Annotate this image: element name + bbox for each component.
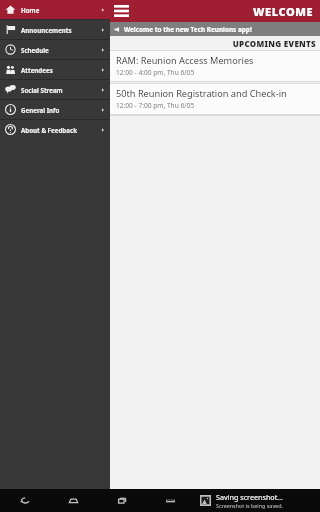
staticText: Welcome to the new Tech Reunions app!	[124, 25, 252, 34]
staticText: Schedule	[21, 46, 49, 54]
button[interactable]: Announcements	[0, 20, 110, 39]
button[interactable]: Welcome to the new Tech Reunions app!	[110, 22, 320, 36]
button[interactable]: Home	[0, 0, 110, 19]
button[interactable]: Schedule	[0, 40, 110, 59]
staticText: 12:00 - 7:00 pm, Thu 6/05	[116, 101, 195, 110]
button[interactable]: Social Stream	[0, 80, 110, 99]
button[interactable]: General Info	[0, 100, 110, 119]
button[interactable]: About & Feedback	[0, 120, 110, 139]
staticText: Home	[21, 6, 40, 14]
staticText: Announcements	[21, 26, 72, 34]
staticText: UPCOMING EVENTS	[232, 38, 316, 49]
staticText: 12:00 - 4:00 pm, Thu 6/05	[116, 68, 195, 77]
button[interactable]: Back	[0, 489, 49, 512]
staticText: Attendees	[21, 66, 53, 74]
staticText: General Info	[21, 106, 60, 114]
button[interactable]: Home	[49, 489, 98, 512]
button[interactable]: Keyboard	[146, 489, 194, 512]
staticText: Screenshot is being saved.	[216, 502, 283, 509]
button[interactable]: Attendees	[0, 60, 110, 79]
staticText: RAM: Reunion Access Memories	[116, 54, 254, 67]
staticText: About & Feedback	[21, 126, 77, 134]
staticText: Saving screenshot…	[216, 492, 283, 502]
button[interactable]: 50th Reunion Registration and Check-in	[110, 84, 320, 114]
staticText: WELCOME	[253, 4, 314, 19]
button[interactable]: Saving screenshot…	[194, 489, 320, 512]
staticText: Social Stream	[21, 86, 63, 94]
button[interactable]: RAM: Reunion Access Memories	[110, 51, 320, 81]
staticText: 50th Reunion Registration and Check-in	[116, 87, 287, 100]
button[interactable]: Recent apps	[98, 489, 146, 512]
button[interactable]: Open navigation menu	[110, 0, 132, 22]
